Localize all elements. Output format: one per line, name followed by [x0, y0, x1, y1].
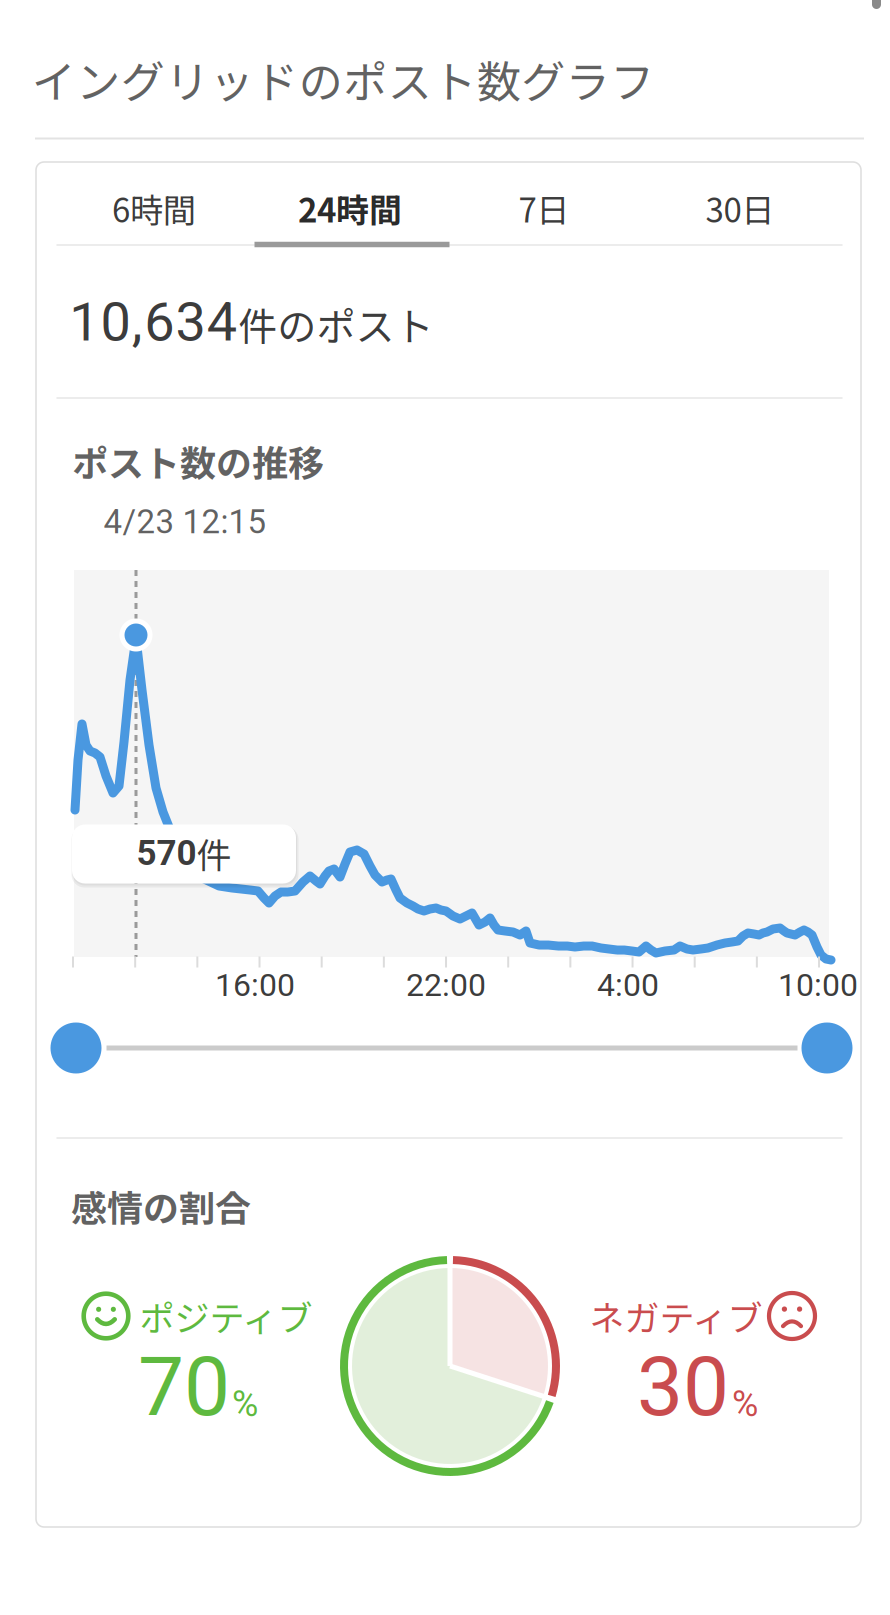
staticText: 16:00: [215, 966, 295, 1004]
staticText: 10,634: [69, 290, 237, 354]
staticText: 4:00: [597, 966, 659, 1004]
staticText: 22:00: [406, 966, 486, 1004]
button[interactable]: Range end: [801, 1022, 852, 1073]
staticText: ポジティブ: [139, 1291, 312, 1341]
staticText: 30日: [705, 184, 774, 232]
staticText: 感情の割合: [71, 1180, 251, 1232]
staticText: 6時間: [112, 184, 196, 232]
staticText: 24時間: [298, 184, 402, 232]
staticText: 件: [196, 828, 231, 878]
staticText: %: [232, 1383, 258, 1425]
staticText: ポスト数の推移: [72, 435, 324, 487]
staticText: 4/23 12:15: [103, 503, 266, 541]
button[interactable]: 30日: [642, 168, 837, 248]
staticText: 570: [136, 832, 196, 873]
staticText: 70: [138, 1339, 230, 1435]
button[interactable]: 7日: [446, 168, 641, 248]
staticText: %: [732, 1383, 758, 1425]
staticText: 30: [637, 1339, 729, 1435]
button[interactable]: 24時間: [252, 168, 447, 248]
staticText: イングリッドのポスト数グラフ: [32, 47, 654, 111]
button[interactable]: Range start: [50, 1022, 101, 1073]
button[interactable]: 6時間: [56, 168, 251, 248]
staticText: 10:00: [778, 966, 858, 1004]
staticText: 7日: [518, 184, 569, 232]
staticText: ネガティブ: [589, 1291, 762, 1341]
staticText: 件のポスト: [238, 296, 433, 352]
